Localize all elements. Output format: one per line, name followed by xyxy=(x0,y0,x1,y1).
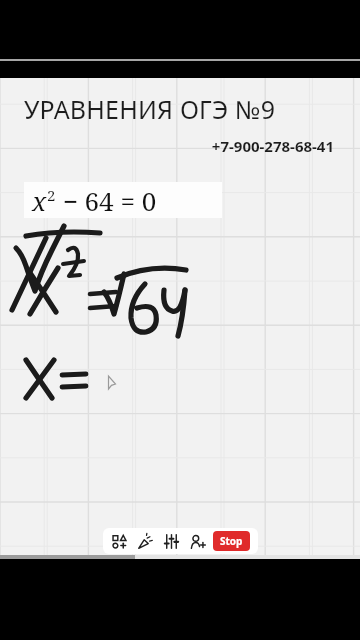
staticText: − 64 = 0 xyxy=(56,183,157,218)
staticText: 2 xyxy=(47,185,56,205)
staticText: УРАВНЕНИЯ ОГЭ №9 xyxy=(24,92,360,126)
button[interactable]: Shapes xyxy=(111,533,128,550)
button[interactable]: Reactions xyxy=(137,533,154,550)
staticText: x xyxy=(32,183,47,218)
button[interactable]: Settings xyxy=(163,533,180,550)
staticText: Stop xyxy=(220,534,243,548)
staticText: +7-900-278-68-41 xyxy=(0,136,334,156)
button[interactable]: Stop xyxy=(213,531,250,551)
button[interactable]: Add person xyxy=(189,533,206,550)
